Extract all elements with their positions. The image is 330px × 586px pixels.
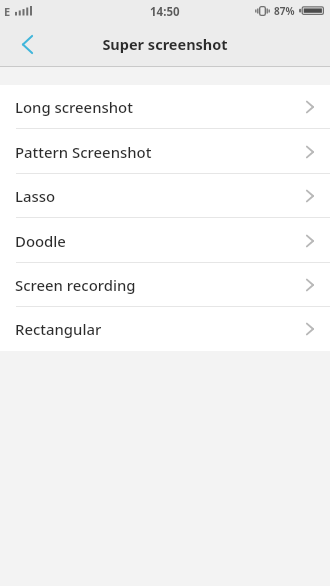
staticText: 14:50 xyxy=(150,4,180,20)
staticText: Long screenshot xyxy=(15,97,133,117)
button[interactable]: Doodle xyxy=(0,218,330,263)
staticText: Doodle xyxy=(15,231,66,251)
staticText: Lasso xyxy=(15,186,56,206)
staticText: Rectangular xyxy=(15,319,102,339)
button[interactable]: Pattern Screenshot xyxy=(0,129,330,174)
staticText: Screen recording xyxy=(15,275,136,295)
staticText: Pattern Screenshot xyxy=(15,142,152,162)
button[interactable]: Lasso xyxy=(0,174,330,218)
button[interactable]: Screen recording xyxy=(0,263,330,307)
button[interactable]: Long screenshot xyxy=(0,85,330,129)
button[interactable]: Rectangular xyxy=(0,307,330,351)
staticText: Super screenshot xyxy=(102,34,228,54)
staticText: E xyxy=(4,4,11,19)
button[interactable]: Back xyxy=(0,22,54,66)
staticText: 87% xyxy=(274,4,295,18)
